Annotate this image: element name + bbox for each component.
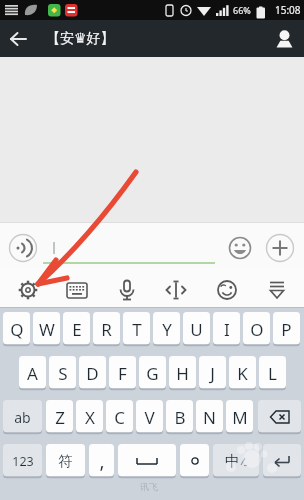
button[interactable] — [156, 273, 196, 307]
staticText: Z — [55, 406, 65, 429]
button[interactable]: Z — [46, 400, 73, 434]
staticText: B — [174, 406, 186, 429]
staticText: 符 — [58, 452, 73, 470]
staticText: I — [224, 318, 230, 341]
button[interactable]: Q — [3, 312, 30, 346]
button[interactable]: T — [123, 312, 150, 346]
button[interactable] — [107, 273, 147, 307]
staticText: S — [58, 362, 68, 385]
button[interactable]: 123 — [3, 444, 42, 478]
staticText: U — [190, 318, 203, 341]
button[interactable]: J — [199, 356, 226, 390]
staticText: 123 — [12, 453, 34, 470]
button[interactable]: I — [213, 312, 240, 346]
staticText: X — [85, 406, 95, 429]
button[interactable]: F — [109, 356, 136, 390]
staticText: Q — [10, 318, 24, 341]
button[interactable]: U — [183, 312, 210, 346]
button[interactable]: V — [136, 400, 163, 434]
staticText: G — [146, 362, 159, 385]
button[interactable] — [263, 444, 301, 478]
staticText: V — [144, 406, 155, 429]
staticText: E — [72, 318, 82, 341]
button[interactable] — [118, 444, 176, 478]
staticText: L — [268, 362, 277, 385]
button[interactable] — [257, 273, 297, 307]
staticText: K — [237, 362, 248, 385]
staticText: 中 — [225, 452, 240, 471]
button[interactable] — [207, 273, 247, 307]
button[interactable] — [0, 20, 36, 57]
staticText: T — [132, 318, 142, 341]
button[interactable]: 符 — [46, 444, 85, 478]
button[interactable]: E — [63, 312, 90, 346]
button[interactable]: C — [106, 400, 133, 434]
button[interactable]: M — [226, 400, 253, 434]
staticText: C — [114, 406, 125, 429]
button[interactable]: , — [89, 444, 114, 478]
button[interactable]: Y — [153, 312, 180, 346]
button[interactable] — [180, 444, 209, 478]
button[interactable]: N — [196, 400, 223, 434]
button[interactable]: 中 — [213, 444, 259, 478]
button[interactable] — [264, 20, 304, 57]
button[interactable]: H — [169, 356, 196, 390]
button[interactable]: P — [273, 312, 300, 346]
staticText: P — [281, 318, 292, 341]
button[interactable]: S — [49, 356, 76, 390]
button[interactable] — [57, 273, 97, 307]
button[interactable]: A — [19, 356, 46, 390]
button[interactable] — [8, 233, 38, 263]
button[interactable] — [228, 236, 252, 260]
staticText: W — [39, 318, 55, 341]
button[interactable] — [258, 400, 301, 434]
staticText: , — [99, 448, 105, 474]
staticText: ab — [14, 408, 31, 427]
button[interactable]: K — [229, 356, 256, 390]
staticText: H — [176, 362, 189, 385]
button[interactable]: L — [259, 356, 286, 390]
staticText: R — [101, 318, 112, 341]
staticText: Y — [162, 318, 172, 341]
staticText: 讯飞 — [140, 481, 158, 492]
staticText: D — [86, 362, 99, 385]
staticText: O — [250, 318, 264, 341]
button[interactable]: O — [243, 312, 270, 346]
button[interactable]: X — [76, 400, 103, 434]
staticText: 【安♛好】 — [46, 30, 115, 48]
staticText: J — [210, 362, 215, 385]
button[interactable]: D — [79, 356, 106, 390]
staticText: A — [27, 362, 38, 385]
button[interactable]: ab — [3, 400, 42, 434]
button[interactable] — [265, 233, 295, 263]
staticText: 66% — [233, 4, 251, 16]
staticText: N — [203, 406, 216, 429]
button[interactable]: W — [33, 312, 60, 346]
staticText: M — [232, 406, 248, 429]
staticText: 15:08 — [275, 3, 301, 17]
staticText: F — [118, 362, 127, 385]
button[interactable]: B — [166, 400, 193, 434]
button[interactable]: R — [93, 312, 120, 346]
button[interactable]: G — [139, 356, 166, 390]
button[interactable] — [8, 273, 48, 307]
